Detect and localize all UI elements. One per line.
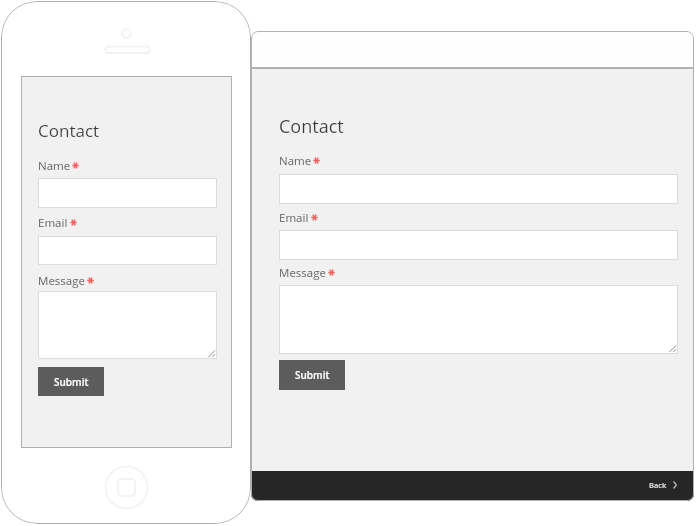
button[interactable]: Email field — [279, 230, 678, 260]
button[interactable]: Submit — [279, 360, 345, 390]
button[interactable]: Name field — [38, 178, 217, 208]
button[interactable]: Message field — [279, 285, 678, 354]
staticText: Message — [38, 273, 85, 289]
button[interactable]: Name field — [279, 174, 678, 204]
staticText: Email — [38, 215, 68, 231]
staticText: Contact — [279, 114, 344, 139]
staticText: Submit — [295, 368, 330, 382]
button[interactable]: Message field — [38, 291, 217, 359]
staticText: Contact — [38, 119, 99, 142]
staticText: Submit — [54, 375, 89, 389]
button[interactable]: Submit — [38, 367, 104, 396]
staticText: Back — [649, 480, 667, 490]
button[interactable]: Back — [632, 474, 694, 498]
staticText: Name — [38, 158, 71, 174]
staticText: Name — [279, 153, 312, 169]
button[interactable]: Email field — [38, 236, 217, 265]
staticText: Email — [279, 210, 309, 226]
staticText: Message — [279, 265, 326, 281]
